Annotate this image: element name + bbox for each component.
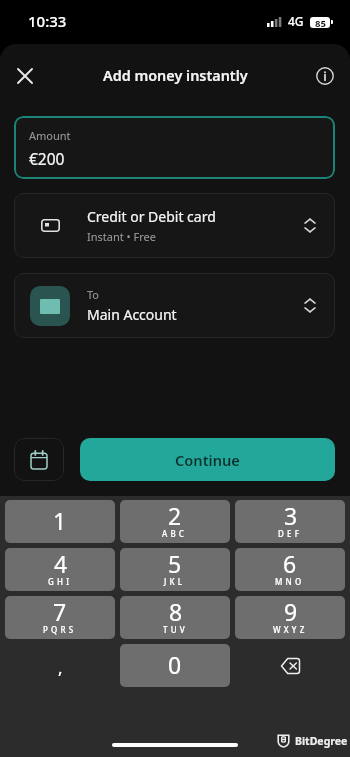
staticText: , xyxy=(58,656,63,679)
staticText: Continue xyxy=(175,450,240,470)
staticText: MNO xyxy=(275,576,305,587)
staticText: WXYZ xyxy=(273,624,308,635)
button[interactable]: 6 xyxy=(235,548,345,591)
button[interactable]: 8 xyxy=(120,596,230,639)
button[interactable]: Close xyxy=(3,54,47,98)
staticText: 3 xyxy=(284,500,298,531)
staticText: 4 xyxy=(54,548,68,579)
staticText: GHI xyxy=(48,576,73,587)
staticText: Instant • Free xyxy=(87,229,157,244)
button[interactable]: To xyxy=(14,273,335,338)
staticText: 0 xyxy=(168,649,182,680)
staticText: Main Account xyxy=(87,305,177,324)
button[interactable]: 0 xyxy=(120,644,230,687)
staticText: 8 xyxy=(169,596,183,627)
button[interactable]: 2 xyxy=(120,500,230,543)
staticText: ABC xyxy=(162,528,188,539)
button[interactable]: Information xyxy=(305,56,345,96)
button[interactable]: Decimal separator xyxy=(5,644,115,687)
staticText: JKL xyxy=(164,576,186,587)
staticText: To xyxy=(87,287,100,302)
staticText: 10:33 xyxy=(28,11,67,31)
button[interactable]: 1 xyxy=(5,500,115,543)
staticText: PQRS xyxy=(43,624,77,635)
staticText: 7 xyxy=(53,596,67,627)
staticText: 85 xyxy=(315,17,326,28)
button[interactable]: 3 xyxy=(235,500,345,543)
staticText: TUV xyxy=(163,624,188,635)
button[interactable]: 4 xyxy=(5,548,115,591)
staticText: 6 xyxy=(283,548,297,579)
staticText: DEF xyxy=(278,528,303,539)
staticText: 4G xyxy=(288,13,304,29)
staticText: Add money instantly xyxy=(103,66,248,86)
button[interactable]: 5 xyxy=(120,548,230,591)
staticText: BitDegree xyxy=(295,734,348,748)
staticText: Amount xyxy=(29,128,71,143)
staticText: €200 xyxy=(29,148,65,169)
staticText: Credit or Debit card xyxy=(87,207,216,226)
staticText: 2 xyxy=(168,500,182,531)
button[interactable]: Credit or Debit card xyxy=(14,193,335,258)
staticText: 1 xyxy=(53,505,67,536)
button[interactable]: Continue xyxy=(80,438,335,481)
button[interactable]: 9 xyxy=(235,596,345,639)
staticText: 5 xyxy=(168,548,182,579)
button[interactable]: Amount xyxy=(14,116,335,179)
button[interactable]: Schedule payment xyxy=(14,438,64,481)
button[interactable]: 7 xyxy=(5,596,115,639)
staticText: 9 xyxy=(284,596,298,627)
button[interactable]: Backspace xyxy=(235,644,345,687)
